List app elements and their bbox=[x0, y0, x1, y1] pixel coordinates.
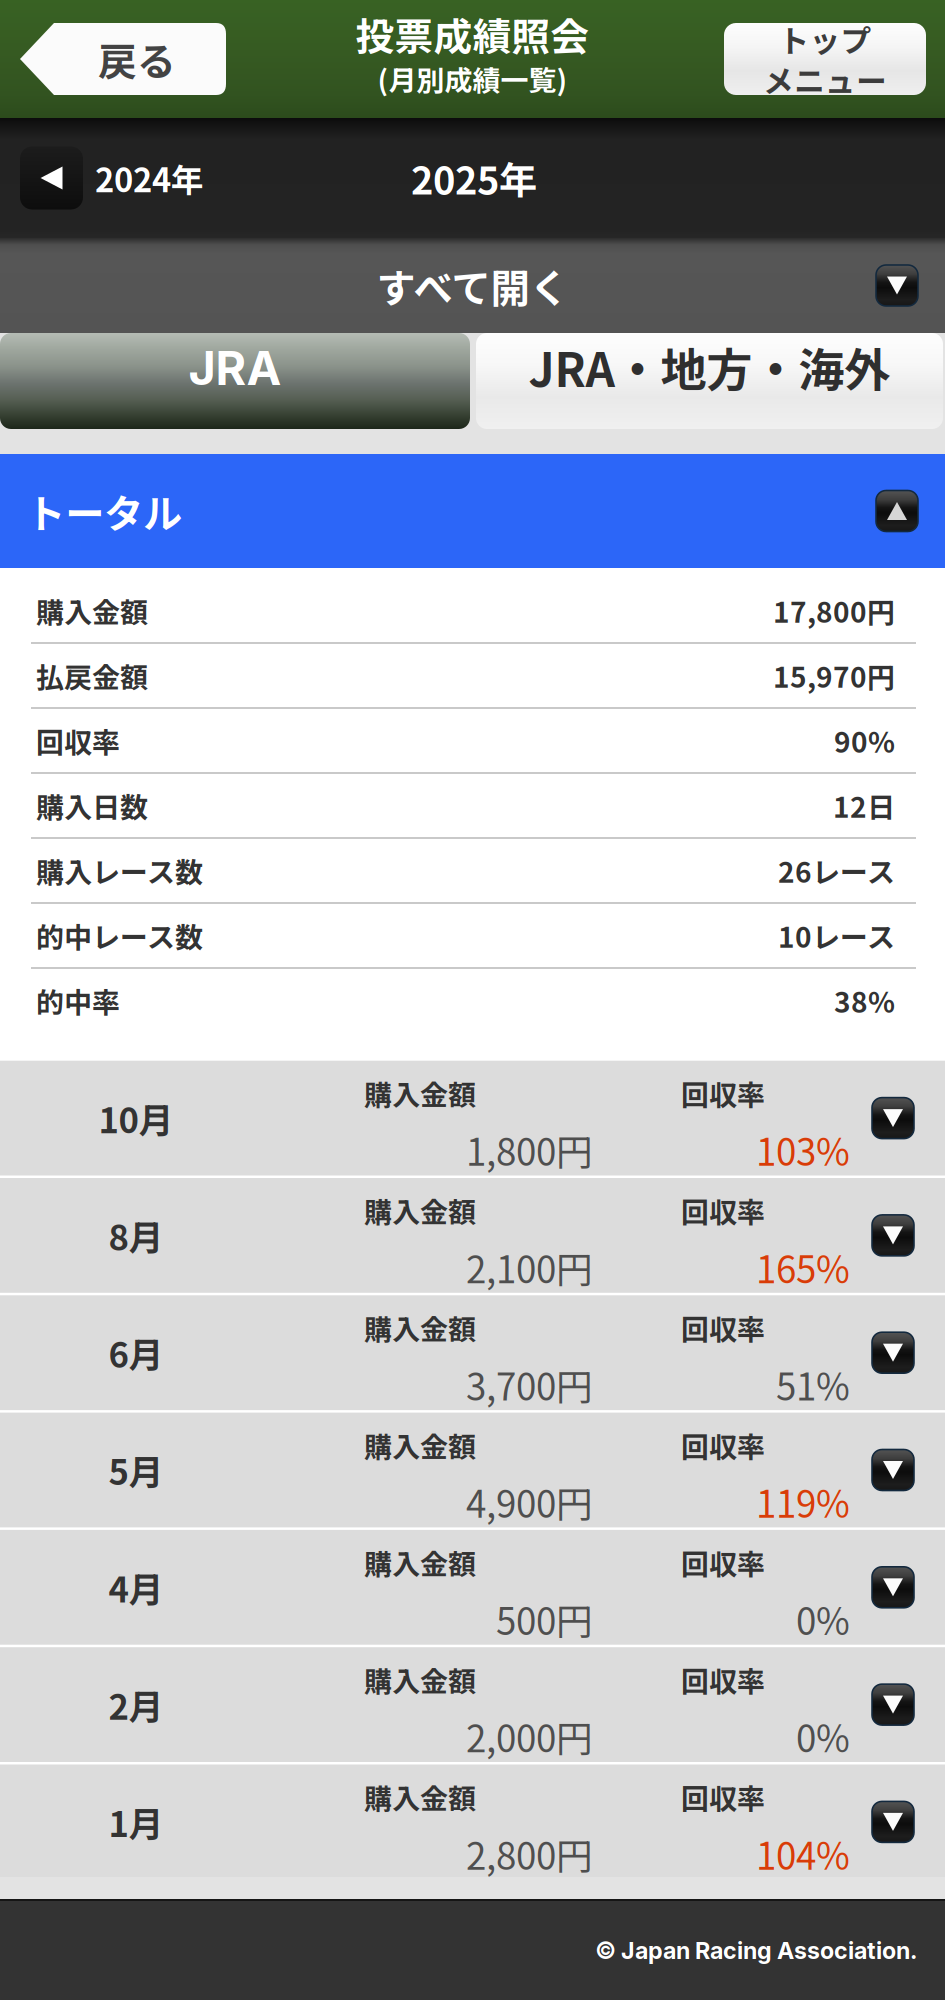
staticText: 2025年 bbox=[411, 150, 537, 205]
button[interactable]: 10月 bbox=[0, 1061, 945, 1175]
staticText: JRA bbox=[188, 340, 281, 396]
staticText: 購入レース数 bbox=[36, 850, 203, 891]
staticText: 購入金額 bbox=[364, 1542, 476, 1582]
staticText: 165% bbox=[756, 1241, 850, 1294]
staticText: 8月 bbox=[108, 1210, 163, 1260]
button[interactable]: トータルを閉じる bbox=[876, 490, 918, 531]
staticText: 0% bbox=[796, 1710, 850, 1763]
button[interactable]: 4月の明細を開く bbox=[872, 1567, 914, 1608]
button[interactable]: JRA bbox=[0, 333, 470, 429]
staticText: 2,100円 bbox=[466, 1241, 593, 1294]
staticText: 購入金額 bbox=[364, 1307, 476, 1348]
button[interactable]: トータル bbox=[0, 454, 945, 568]
staticText: (月別成績一覧) bbox=[377, 58, 567, 99]
button[interactable]: すべて開く bbox=[876, 265, 918, 306]
button[interactable]: 1月の明細を開く bbox=[872, 1801, 914, 1842]
button[interactable]: JRA・地方・海外 bbox=[476, 333, 943, 429]
staticText: 回収率 bbox=[681, 1659, 765, 1700]
button[interactable]: 8月 bbox=[0, 1178, 945, 1293]
staticText: すべて開く bbox=[376, 257, 568, 314]
staticText: 119% bbox=[756, 1475, 850, 1528]
staticText: 購入金額 bbox=[364, 1190, 476, 1231]
button[interactable]: 前の年 bbox=[20, 146, 83, 209]
staticText: 2,800円 bbox=[466, 1827, 593, 1880]
staticText: 1月 bbox=[108, 1797, 163, 1847]
staticText: 2月 bbox=[108, 1679, 163, 1730]
button[interactable]: 1月 bbox=[0, 1764, 945, 1879]
button[interactable]: すべて開く bbox=[0, 238, 945, 333]
button[interactable]: 2月 bbox=[0, 1647, 945, 1762]
staticText: 購入金額 bbox=[364, 1073, 476, 1113]
button[interactable]: 2024年 bbox=[95, 154, 204, 202]
staticText: 0% bbox=[796, 1592, 850, 1646]
staticText: 90% bbox=[834, 720, 895, 761]
staticText: 104% bbox=[756, 1827, 850, 1880]
staticText: 2,000円 bbox=[466, 1710, 593, 1763]
staticText: 500円 bbox=[496, 1592, 593, 1646]
staticText: 回収率 bbox=[681, 1777, 765, 1817]
staticText: 51% bbox=[776, 1358, 850, 1411]
staticText: 回収率 bbox=[681, 1425, 765, 1465]
staticText: 2024年 bbox=[95, 154, 204, 202]
staticText: 3,700円 bbox=[466, 1358, 593, 1411]
staticText: メニュー bbox=[763, 57, 887, 101]
staticText: 購入金額 bbox=[36, 590, 148, 631]
staticText: 5月 bbox=[108, 1445, 163, 1495]
staticText: 17,800円 bbox=[773, 590, 895, 631]
staticText: 投票成績照会 bbox=[355, 6, 589, 62]
staticText: JRA・地方・海外 bbox=[528, 334, 890, 400]
staticText: 払戻金額 bbox=[36, 655, 148, 696]
staticText: 的中レース数 bbox=[36, 915, 203, 956]
staticText: 回収率 bbox=[36, 720, 120, 761]
staticText: 10レース bbox=[778, 915, 895, 956]
staticText: 4月 bbox=[108, 1562, 163, 1612]
button[interactable]: 5月 bbox=[0, 1413, 945, 1527]
staticText: 10月 bbox=[98, 1093, 173, 1143]
staticText: © Japan Racing Association. bbox=[595, 1936, 917, 1965]
staticText: 購入日数 bbox=[36, 785, 148, 826]
button[interactable]: 8月の明細を開く bbox=[872, 1215, 914, 1256]
staticText: 的中率 bbox=[36, 980, 120, 1021]
staticText: 103% bbox=[756, 1123, 850, 1176]
staticText: トップ bbox=[778, 17, 871, 61]
staticText: 1,800円 bbox=[466, 1123, 593, 1176]
staticText: 回収率 bbox=[681, 1073, 765, 1113]
button[interactable]: 10月の明細を開く bbox=[872, 1098, 914, 1139]
button[interactable]: トップ bbox=[724, 23, 926, 95]
staticText: トータル bbox=[26, 482, 182, 539]
staticText: 6月 bbox=[108, 1328, 163, 1378]
staticText: 15,970円 bbox=[773, 655, 895, 696]
button[interactable]: 6月の明細を開く bbox=[872, 1332, 914, 1373]
staticText: 12日 bbox=[833, 785, 895, 826]
staticText: 回収率 bbox=[681, 1190, 765, 1231]
staticText: 購入金額 bbox=[364, 1425, 476, 1465]
button[interactable]: 2月の明細を開く bbox=[872, 1684, 914, 1725]
staticText: 購入金額 bbox=[364, 1659, 476, 1700]
staticText: 38% bbox=[834, 980, 895, 1021]
button[interactable]: 6月 bbox=[0, 1295, 945, 1410]
button[interactable]: 戻る bbox=[20, 23, 226, 95]
button[interactable]: 4月 bbox=[0, 1530, 945, 1645]
staticText: 4,900円 bbox=[466, 1475, 593, 1528]
staticText: 購入金額 bbox=[364, 1777, 476, 1817]
staticText: 回収率 bbox=[681, 1307, 765, 1348]
staticText: 戻る bbox=[98, 31, 176, 87]
staticText: 回収率 bbox=[681, 1542, 765, 1582]
button[interactable]: 5月の明細を開く bbox=[872, 1449, 914, 1490]
staticText: 26レース bbox=[778, 850, 895, 891]
